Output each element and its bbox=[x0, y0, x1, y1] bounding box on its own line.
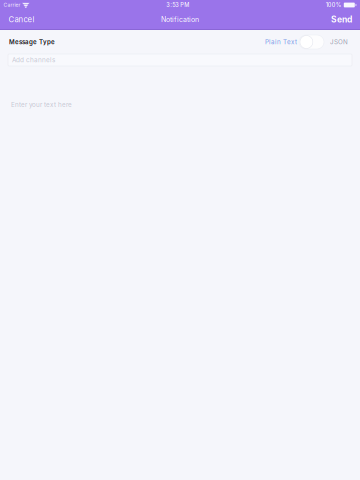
button[interactable]: Plain Text bbox=[262, 35, 298, 49]
staticText: Send bbox=[331, 14, 352, 25]
staticText: Cancel bbox=[8, 15, 34, 24]
button[interactable]: JSON bbox=[327, 35, 351, 49]
staticText: Message Type bbox=[9, 38, 55, 46]
staticText: Add channels bbox=[12, 56, 55, 64]
button[interactable]: Cancel bbox=[0, 10, 43, 29]
staticText: Notification bbox=[161, 15, 199, 24]
staticText: Plain Text bbox=[265, 38, 297, 46]
staticText: 3:53 PM bbox=[166, 2, 189, 8]
button[interactable]: Send bbox=[323, 9, 360, 30]
staticText: Enter your text here bbox=[11, 101, 72, 109]
staticText: Carrier bbox=[3, 2, 20, 8]
staticText: JSON bbox=[330, 38, 348, 46]
button[interactable]: Message format: Plain Text or JSON bbox=[298, 35, 327, 49]
staticText: 100% bbox=[326, 2, 342, 8]
